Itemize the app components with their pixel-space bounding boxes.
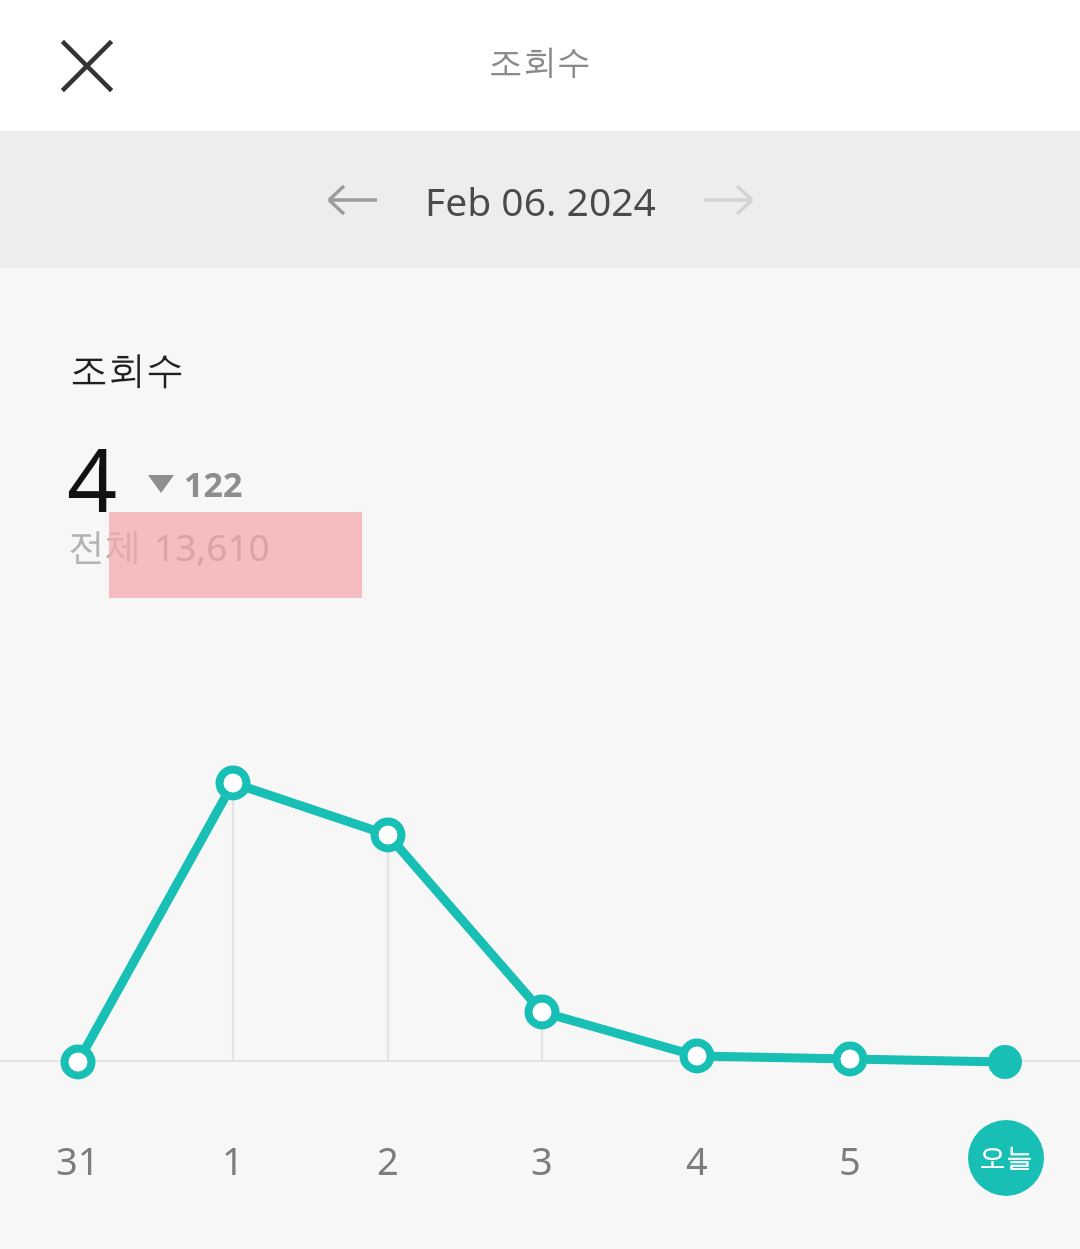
button[interactable]: Next day [686,158,770,242]
staticText: Feb 06. 2024 [425,174,656,227]
staticText: 1 [222,1134,244,1186]
staticText: 5 [839,1134,861,1186]
staticText: 조회수 [0,41,1080,84]
staticText: 122 [184,461,243,507]
staticText: 13,610 [154,521,270,571]
staticText: 4 [67,418,118,538]
staticText: 조회수 [70,346,184,394]
button[interactable]: 오늘 [968,1120,1044,1196]
staticText: 오늘 [979,1141,1033,1175]
button[interactable]: Close [39,18,135,114]
button[interactable]: Previous day [311,158,395,242]
staticText: 3 [531,1134,553,1186]
staticText: 2 [377,1134,399,1186]
staticText: 4 [686,1134,708,1186]
staticText: 전체 [68,523,142,570]
staticText: 31 [56,1134,100,1186]
